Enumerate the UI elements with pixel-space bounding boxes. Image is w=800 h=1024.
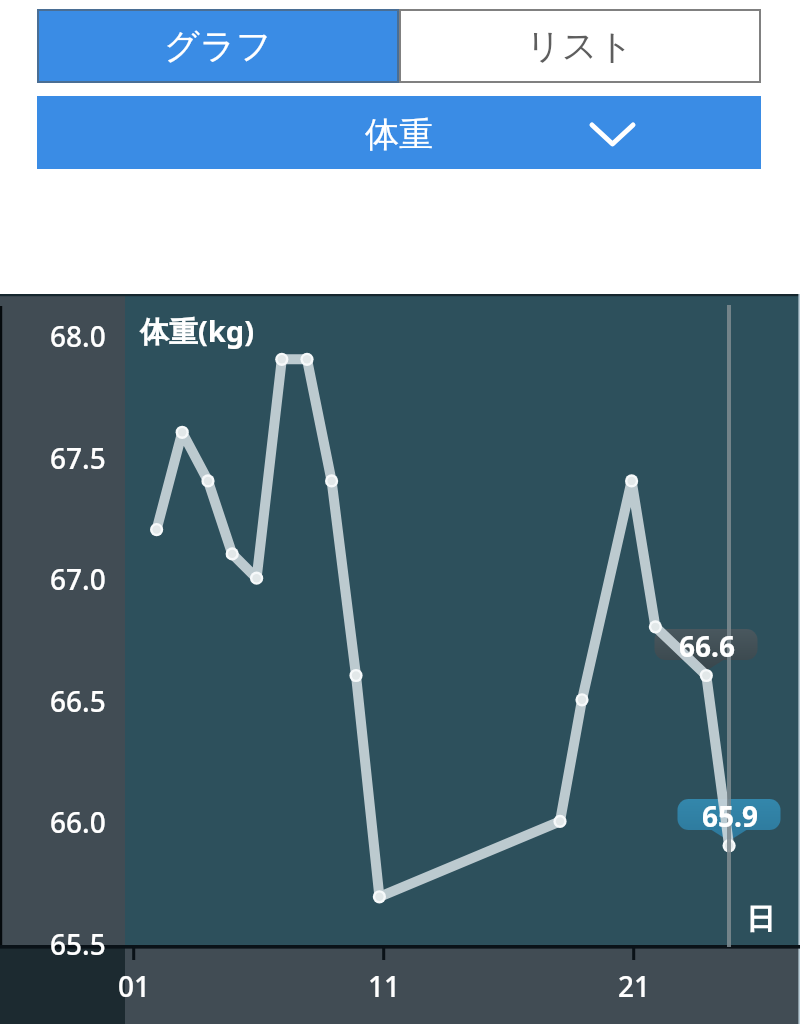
staticText: 01 [118,967,151,1005]
staticText: 65.9 [702,797,758,828]
staticText: 67.5 [50,439,106,477]
button[interactable]: グラフ [37,9,399,83]
staticText: 11 [368,967,401,1005]
staticText: 68.0 [50,317,106,355]
staticText: 66.5 [50,682,106,720]
staticText: 66.6 [679,627,735,658]
staticText: 日 [746,901,775,938]
staticText: グラフ [164,24,272,68]
staticText: 21 [618,967,651,1005]
button[interactable]: リスト [399,9,761,83]
button[interactable]: 体重 chart [0,294,800,1024]
staticText: 体重 [365,113,433,156]
button[interactable]: 体重 selector [37,96,761,169]
staticText: リスト [526,24,634,68]
staticText: 体重(kg) [140,311,254,351]
staticText: 67.0 [50,560,106,598]
staticText: 65.5 [50,925,106,963]
staticText: 66.0 [50,803,106,841]
